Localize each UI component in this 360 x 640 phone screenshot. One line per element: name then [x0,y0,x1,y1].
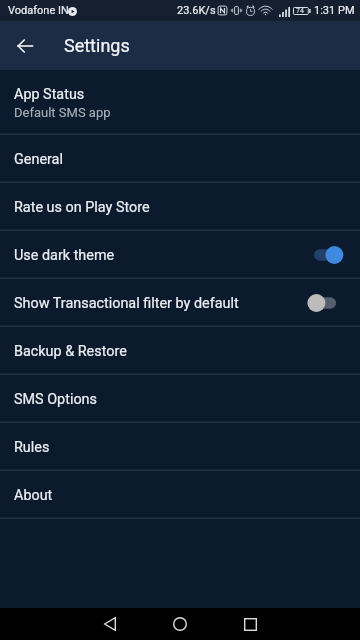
staticText: Use dark theme [14,247,115,264]
button[interactable]: Use dark theme [0,231,360,279]
staticText: General [14,151,63,168]
button[interactable]: App Status [0,70,360,135]
staticText: Rules [14,439,50,456]
button[interactable]: Backup & Restore [0,327,360,375]
button[interactable]: SMS Options [0,375,360,423]
staticText: Settings [64,35,130,56]
button[interactable]: Back [1,22,49,70]
button[interactable]: Back [86,608,134,640]
button[interactable]: About [0,471,360,519]
staticText: About [14,487,53,504]
staticText: App Status [14,86,85,103]
staticText: Default SMS app [14,105,111,120]
button[interactable]: General [0,135,360,183]
button[interactable]: Rate us on Play Store [0,183,360,231]
staticText: SMS Options [14,391,97,408]
staticText: 74 [296,7,304,15]
button[interactable]: Show Transactional filter by default [0,279,360,327]
button[interactable]: Home [156,608,204,640]
staticText: Show Transactional filter by default [14,295,239,312]
button[interactable]: Rules [0,423,360,471]
staticText: Rate us on Play Store [14,199,150,216]
staticText: Backup & Restore [14,343,127,360]
staticText: Vodafone IN [8,4,69,17]
staticText: 23.6K/s [177,4,216,17]
button[interactable]: Recents [226,608,274,640]
staticText: 1:31 PM [314,4,355,17]
